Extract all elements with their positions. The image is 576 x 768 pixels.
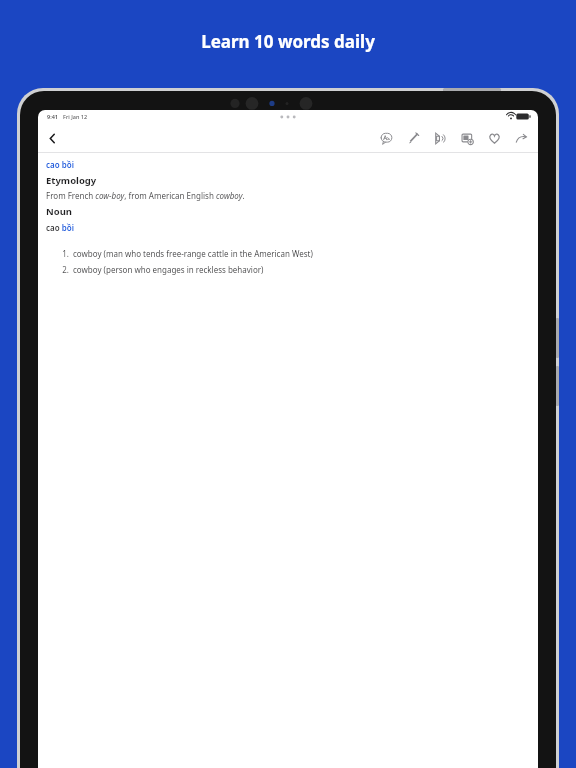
staticText: Noun bbox=[46, 205, 73, 218]
staticText: From French cow-boy, from American Engli… bbox=[46, 190, 245, 201]
button[interactable]: Back bbox=[42, 128, 62, 148]
staticText: cao bồi bbox=[46, 159, 74, 170]
staticText: cao bồi bbox=[46, 222, 74, 233]
staticText: Etymology bbox=[46, 174, 97, 187]
button[interactable]: Share bbox=[508, 125, 535, 151]
button[interactable]: Add flashcard bbox=[454, 125, 481, 151]
staticText: Fri Jan 12 bbox=[63, 113, 88, 120]
staticText: 2. bbox=[58, 264, 69, 275]
staticText: 9:41 bbox=[47, 113, 58, 120]
staticText: 1. bbox=[58, 248, 69, 259]
staticText: Learn 10 words daily bbox=[0, 30, 576, 53]
button[interactable]: Edit note bbox=[400, 125, 427, 151]
staticText: cowboy (person who engages in reckless b… bbox=[73, 264, 264, 275]
button[interactable]: Favorite bbox=[481, 125, 508, 151]
button[interactable]: Translate bbox=[373, 125, 400, 151]
staticText: cowboy (man who tends free-range cattle … bbox=[73, 248, 313, 259]
button[interactable]: Pronounce bbox=[427, 125, 454, 151]
